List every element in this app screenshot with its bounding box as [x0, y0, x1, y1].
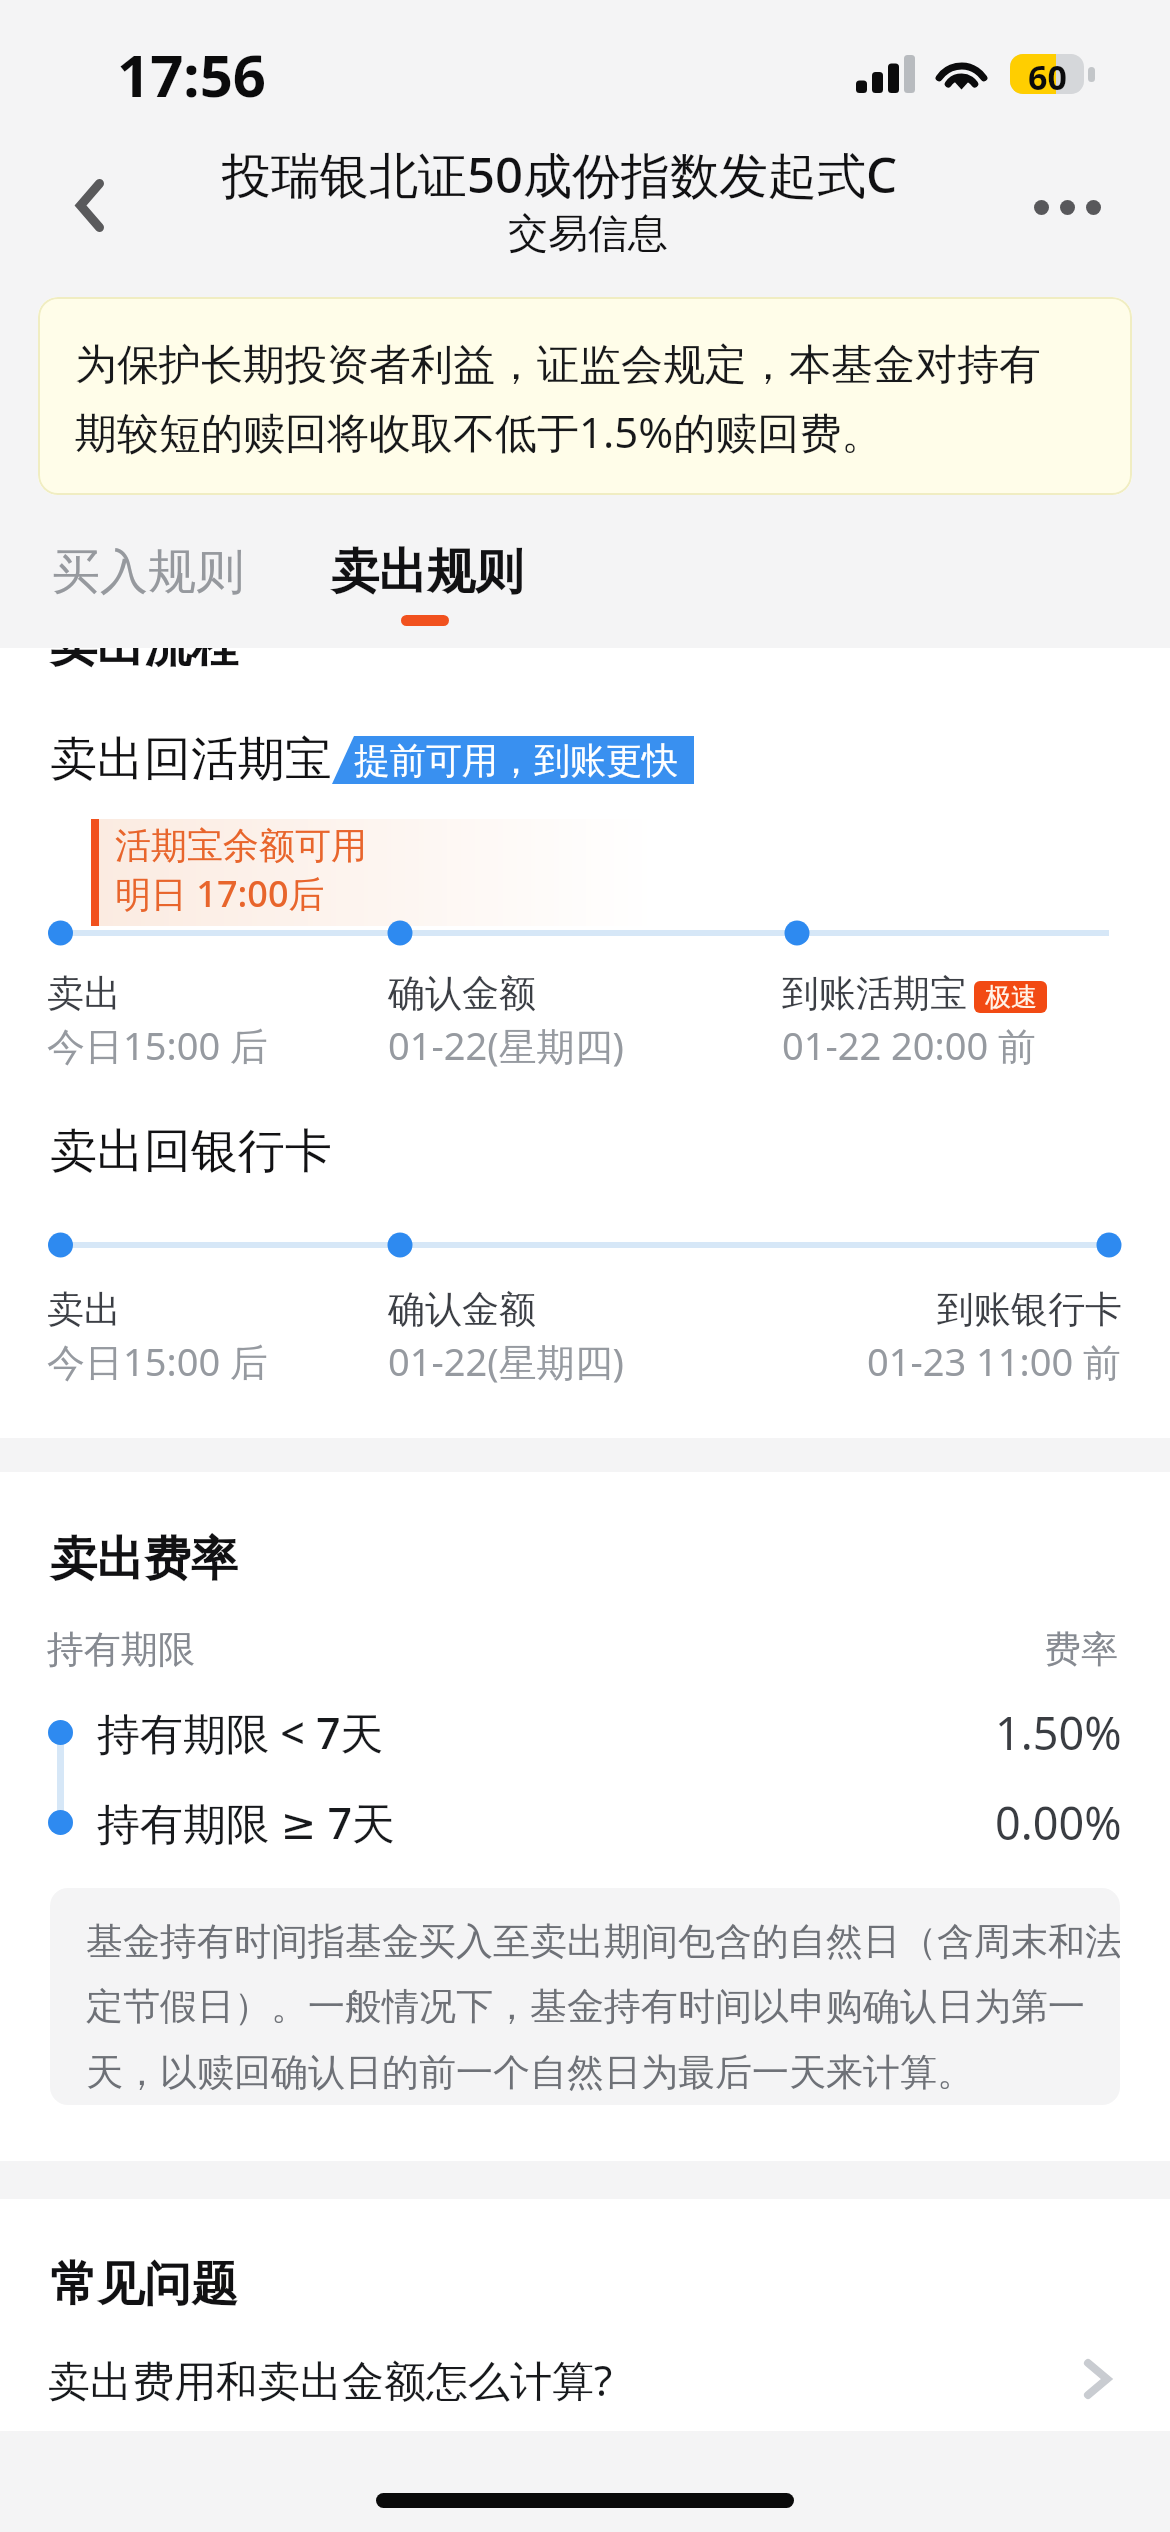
staticText: 费率	[1044, 1626, 1118, 1673]
staticText: 活期宝余额可用 明日 17:00后	[115, 823, 367, 918]
button[interactable]: 买入规则	[52, 542, 257, 638]
staticText: 卖出规则	[331, 542, 523, 602]
staticText: 01-22(星期四)	[388, 1335, 624, 1387]
staticText: 到账活期宝	[782, 970, 967, 1017]
staticText: 提前可用，到账更快	[354, 738, 678, 783]
button[interactable]: Back	[40, 150, 140, 260]
staticText: 卖出费率	[50, 1530, 238, 1589]
staticText: 今日15:00 后	[47, 1335, 269, 1387]
staticText: 基金持有时间指基金买入至卖出期间包含的自然日（含周末和法定节假日）。一般情况下，…	[86, 1918, 1120, 2096]
staticText: 极速	[985, 981, 1037, 1013]
staticText: 买入规则	[52, 542, 244, 602]
staticText: 持有期限 < 7天	[97, 1703, 384, 1762]
staticText: 今日15:00 后	[47, 1019, 269, 1071]
staticText: 01-22(星期四)	[388, 1019, 624, 1071]
staticText: 交易信息	[508, 208, 668, 258]
button[interactable]: 卖出规则	[331, 542, 551, 652]
staticText: 17:56	[117, 35, 267, 114]
staticText: 60	[1028, 54, 1067, 94]
staticText: 卖出回银行卡	[50, 1122, 332, 1181]
staticText: 持有期限	[47, 1626, 195, 1673]
staticText: 卖出流程	[50, 648, 238, 675]
staticText: 卖出	[47, 1286, 121, 1333]
staticText: 持有期限 ≥ 7天	[97, 1793, 395, 1852]
staticText: 常见问题	[50, 2255, 238, 2314]
staticText: 卖出	[47, 970, 121, 1017]
staticText: 0.00%	[995, 1792, 1122, 1853]
staticText: 卖出费用和卖出金额怎么计算?	[48, 2351, 613, 2408]
staticText: 为保护长期投资者利益，证监会规定，本基金对持有期较短的赎回将收取不低于1.5%的…	[75, 339, 1075, 460]
staticText: 确认金额	[388, 1286, 536, 1333]
staticText: 投瑞银北证50成份指数发起式C	[222, 141, 898, 208]
staticText: 卖出回活期宝	[50, 730, 332, 789]
staticText: 01-23 11:00 前	[867, 1335, 1122, 1387]
staticText: 01-22 20:00 前	[782, 1019, 1037, 1071]
button[interactable]: More options	[1011, 164, 1123, 250]
staticText: 1.50%	[995, 1702, 1122, 1763]
button[interactable]: 卖出费用和卖出金额怎么计算?	[0, 2339, 1170, 2419]
staticText: 到账银行卡	[937, 1286, 1122, 1333]
staticText: 确认金额	[388, 970, 536, 1017]
